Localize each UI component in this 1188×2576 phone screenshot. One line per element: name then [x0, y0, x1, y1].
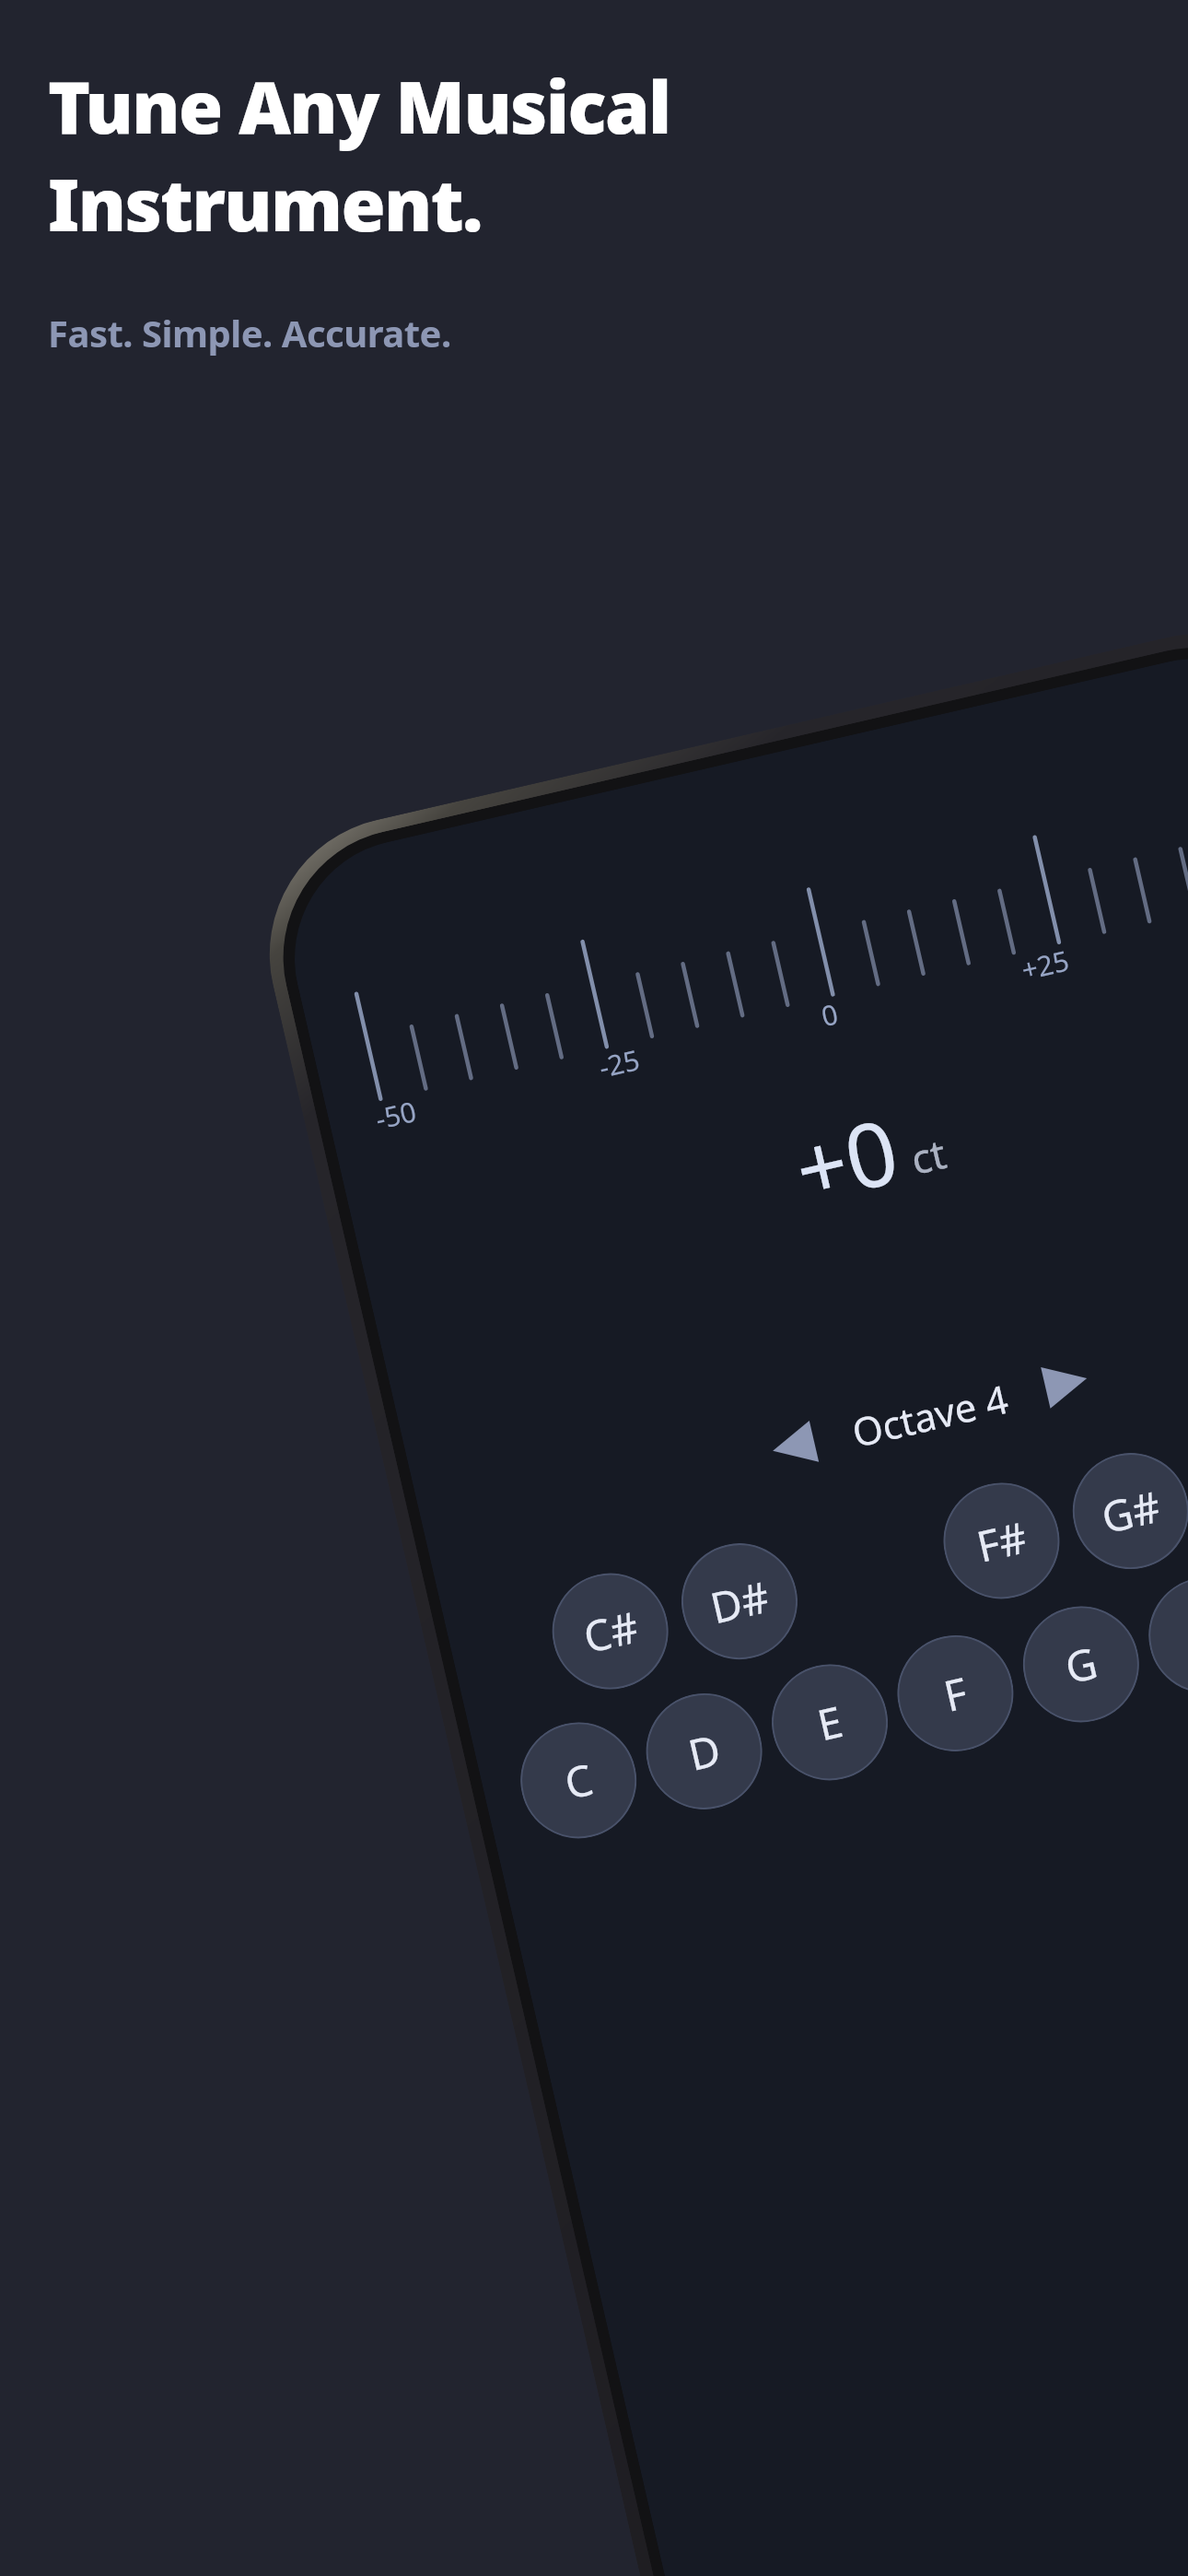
staticText: C#: [578, 1597, 644, 1666]
staticText: D#: [704, 1567, 775, 1637]
staticText: Octave 4: [847, 1372, 1013, 1458]
staticText: F: [938, 1663, 973, 1725]
staticText: 0: [818, 994, 842, 1035]
staticText: Tune Any Musical: [48, 57, 670, 155]
button[interactable]: G: [1011, 1595, 1151, 1734]
staticText: F#: [971, 1507, 1032, 1575]
staticText: ct: [905, 1125, 952, 1187]
button[interactable]: C#: [541, 1562, 680, 1701]
button[interactable]: A: [1137, 1566, 1188, 1705]
button[interactable]: C: [509, 1711, 648, 1850]
button[interactable]: Previous octave: [754, 1406, 833, 1486]
staticText: G: [1059, 1633, 1103, 1697]
button[interactable]: G#: [1061, 1441, 1188, 1581]
staticText: Instrument.: [48, 155, 482, 252]
staticText: +25: [1018, 941, 1073, 989]
button[interactable]: D#: [670, 1532, 809, 1671]
staticText: E: [812, 1692, 848, 1754]
button[interactable]: D: [635, 1682, 774, 1821]
staticText: D: [683, 1720, 726, 1784]
staticText: Fast. Simple. Accurate.: [48, 308, 451, 357]
button[interactable]: F#: [932, 1471, 1071, 1610]
staticText: -50: [372, 1092, 420, 1138]
button[interactable]: Next octave: [1026, 1343, 1106, 1423]
button[interactable]: F: [886, 1624, 1025, 1763]
staticText: -25: [595, 1040, 643, 1086]
staticText: +0: [783, 1088, 909, 1229]
staticText: C: [559, 1749, 599, 1812]
button[interactable]: E: [760, 1653, 899, 1792]
staticText: G#: [1096, 1477, 1166, 1546]
